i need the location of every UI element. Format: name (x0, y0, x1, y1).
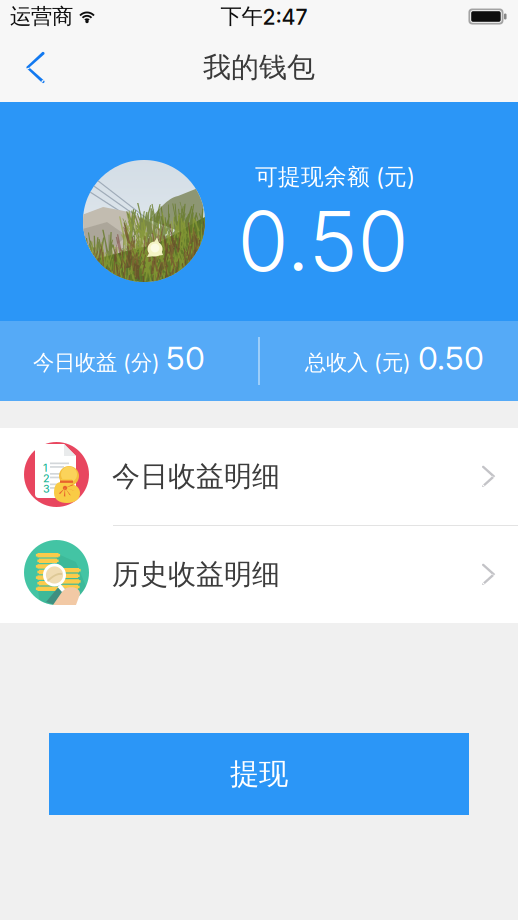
staticText: 运营商 (10, 3, 73, 30)
staticText: 50 (166, 339, 205, 377)
staticText: 今日收益明细 (112, 459, 280, 494)
staticText: 可提现余额 (元) (255, 163, 415, 191)
staticText: 1 (43, 461, 47, 474)
staticText: 我的钱包 (203, 50, 315, 85)
staticText: 0.50 (237, 191, 408, 291)
staticText: 下午2:47 (220, 3, 307, 30)
staticText: 3 (43, 482, 50, 495)
staticText: 今日收益 (分) (33, 349, 160, 376)
button[interactable]: 历史收益明细 (0, 526, 518, 623)
button[interactable]: 1 (0, 428, 518, 525)
button[interactable]: 提现 (49, 733, 469, 815)
staticText: 0.50 (418, 339, 484, 377)
button[interactable]: Back (8, 39, 62, 95)
staticText: 提现 (230, 755, 288, 792)
staticText: 历史收益明细 (112, 557, 280, 592)
staticText: 2 (43, 472, 50, 485)
staticText: 总收入 (元) (305, 349, 411, 376)
